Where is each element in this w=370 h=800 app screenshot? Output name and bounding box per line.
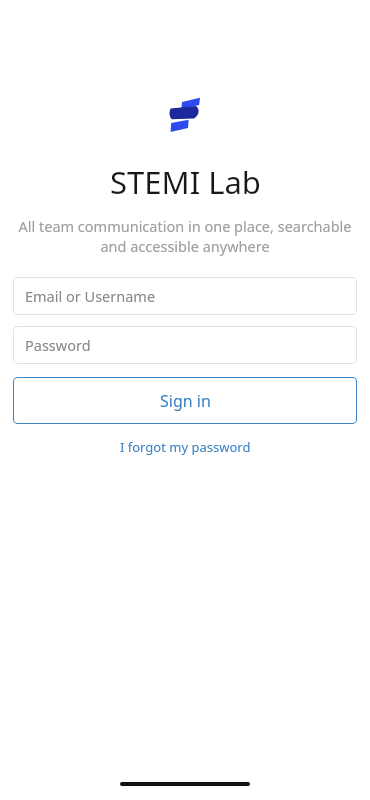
staticText: STEMI Lab: [110, 161, 261, 203]
staticText: Sign in: [160, 390, 211, 412]
button[interactable]: Password: [13, 326, 357, 364]
button[interactable]: Email or Username: [13, 277, 357, 315]
button[interactable]: Sign in: [13, 377, 357, 424]
staticText: Email or Username: [25, 286, 156, 306]
staticText: Password: [25, 335, 91, 355]
staticText: I forgot my password: [120, 438, 251, 456]
button[interactable]: I forgot my password: [110, 433, 261, 461]
staticText: All team communication in one place, sea…: [14, 216, 356, 257]
other: STEMI Lab logo: [170, 97, 200, 133]
